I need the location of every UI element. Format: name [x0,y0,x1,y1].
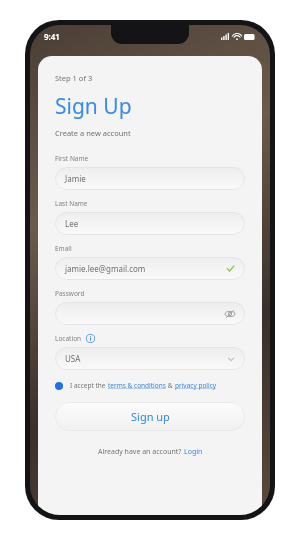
staticText: Create a new account [55,128,131,138]
staticText: Step 1 of 3 [55,73,93,83]
staticText: Location [55,334,82,343]
staticText: Sign up [131,409,170,424]
button[interactable]: Show password [55,302,245,325]
staticText: Already have an account? [98,447,184,457]
staticText: I accept the [70,381,108,390]
staticText: Last Name [55,199,88,208]
staticText: First Name [55,154,89,163]
staticText: Jamie [65,173,86,184]
staticText: Password [55,289,85,298]
button[interactable]: Jamie [55,167,245,190]
button[interactable]: USA [55,347,245,370]
staticText: Lee [65,218,79,229]
staticText: Sign Up [55,92,132,121]
staticText: USA [65,353,81,364]
button[interactable]: jamie.lee@gmail.com [55,257,245,280]
button[interactable]: Location info [86,334,95,343]
button[interactable]: terms & conditions [108,381,166,390]
button[interactable]: privacy policy [175,381,217,390]
button[interactable]: Lee [55,212,245,235]
button[interactable]: Login [184,447,203,457]
button[interactable]: Sign up [55,402,245,431]
staticText: & [166,381,175,390]
staticText: Email [55,244,72,253]
button[interactable]: I accept the [55,381,245,390]
button[interactable]: Show password [225,309,235,319]
staticText: jamie.lee@gmail.com [65,263,146,274]
staticText: 9:41 [44,31,60,42]
